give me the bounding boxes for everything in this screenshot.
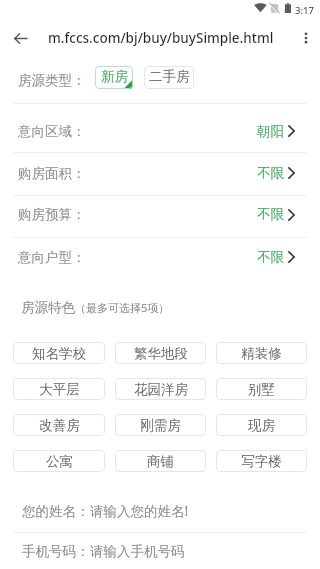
button[interactable]: 精装修 (216, 342, 307, 364)
staticText: 请输入您的姓名! (90, 502, 189, 520)
button[interactable]: 改善房 (13, 414, 105, 436)
button[interactable]: 知名学校 (13, 342, 105, 364)
button[interactable]: 购房面积： (0, 153, 320, 195)
button[interactable]: 大平层 (13, 378, 105, 400)
staticText: 不限 (257, 165, 284, 182)
staticText: 花园洋房 (134, 381, 188, 398)
staticText: 房源类型： (18, 72, 86, 89)
staticText: 写字楼 (241, 453, 282, 470)
staticText: 知名学校 (32, 345, 86, 362)
staticText: 二手房 (149, 68, 190, 85)
staticText: 购房预算： (18, 206, 86, 223)
button[interactable]: Back (0, 19, 38, 57)
staticText: 3:17 (295, 4, 314, 17)
button[interactable]: 意向区域： (0, 104, 320, 152)
button[interactable]: 新房 (95, 66, 133, 89)
staticText: 您的姓名： (22, 503, 90, 520)
staticText: 现房 (248, 417, 275, 434)
staticText: 意向户型： (18, 249, 86, 266)
button[interactable]: 手机号码： (0, 533, 320, 569)
staticText: 别墅 (248, 381, 275, 398)
button[interactable]: 现房 (216, 414, 307, 436)
button[interactable]: 别墅 (216, 378, 307, 400)
staticText: 精装修 (241, 345, 282, 362)
button[interactable]: More options (282, 19, 320, 57)
button[interactable]: 您的姓名： (0, 490, 320, 532)
staticText: （最多可选择5项） (75, 300, 170, 315)
button[interactable]: 繁华地段 (115, 342, 206, 364)
staticText: 手机号码： (22, 543, 90, 560)
staticText: 繁华地段 (134, 345, 188, 362)
button[interactable]: 购房预算： (0, 196, 320, 237)
button[interactable]: 刚需房 (115, 414, 206, 436)
staticText: 公寓 (46, 453, 73, 470)
button[interactable]: 二手房 (144, 66, 194, 89)
button[interactable]: 商铺 (115, 450, 206, 472)
staticText: 不限 (257, 249, 284, 266)
staticText: 请输入手机号码 (90, 543, 185, 560)
button[interactable]: 意向户型： (0, 238, 320, 280)
staticText: 房源特色 (21, 299, 75, 316)
staticText: 新房 (101, 68, 128, 85)
button[interactable]: 写字楼 (216, 450, 307, 472)
staticText: 改善房 (39, 417, 80, 434)
staticText: 商铺 (147, 453, 174, 470)
staticText: 购房面积： (18, 165, 86, 182)
staticText: 大平层 (39, 381, 80, 398)
staticText: m.fccs.com/bj/buy/buySimple.html (48, 29, 274, 47)
button[interactable]: 公寓 (13, 450, 105, 472)
staticText: 刚需房 (140, 417, 181, 434)
staticText: 意向区域： (18, 123, 86, 140)
button[interactable]: 花园洋房 (115, 378, 206, 400)
staticText: 不限 (257, 206, 284, 223)
staticText: 朝阳 (257, 123, 284, 140)
